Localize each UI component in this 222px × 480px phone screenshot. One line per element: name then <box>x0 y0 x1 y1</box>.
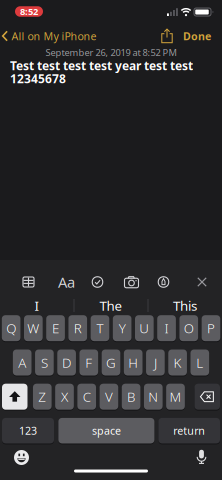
button[interactable]: K <box>168 349 187 375</box>
button[interactable]: Dictation <box>193 448 209 466</box>
staticText: return <box>173 424 205 438</box>
staticText: L <box>196 354 203 371</box>
button[interactable]: 123 <box>2 418 54 443</box>
staticText: The <box>99 297 122 314</box>
staticText: U <box>139 319 149 337</box>
button[interactable]: The <box>76 296 146 315</box>
button[interactable]: This <box>150 296 220 315</box>
staticText: I <box>165 319 169 337</box>
button[interactable]: H <box>124 349 142 375</box>
staticText: Y <box>119 319 126 337</box>
button[interactable]: G <box>102 349 120 375</box>
button[interactable]: Back <box>1 27 96 45</box>
button[interactable]: F <box>79 349 98 375</box>
button[interactable]: Insert photo <box>122 274 140 290</box>
button[interactable]: U <box>135 315 154 341</box>
staticText: September 26, 2019 at 8:52 PM <box>45 46 176 59</box>
button[interactable]: I <box>2 296 72 315</box>
button[interactable]: Done <box>183 27 211 45</box>
staticText: Q <box>6 319 16 337</box>
staticText: D <box>62 354 71 371</box>
staticText: W <box>27 319 39 337</box>
button[interactable]: D <box>57 349 76 375</box>
button[interactable]: C <box>77 384 96 410</box>
staticText: N <box>148 388 158 405</box>
staticText: 8:52 <box>20 5 38 18</box>
staticText: This <box>173 297 197 314</box>
button[interactable]: Delete <box>194 384 220 410</box>
button[interactable]: P <box>202 315 220 341</box>
staticText: I <box>34 297 39 314</box>
staticText: All on My iPhone <box>11 29 96 43</box>
staticText: P <box>207 319 215 337</box>
button[interactable]: return <box>158 418 220 443</box>
button[interactable]: E <box>46 315 65 341</box>
button[interactable]: Text formatting <box>57 274 75 290</box>
staticText: H <box>128 354 138 371</box>
staticText: Z <box>38 388 46 405</box>
button[interactable]: Y <box>113 315 131 341</box>
staticText: X <box>61 388 68 405</box>
button[interactable]: O <box>179 315 198 341</box>
staticText: E <box>52 319 59 337</box>
staticText: R <box>74 319 82 337</box>
staticText: B <box>127 388 135 405</box>
staticText: C <box>83 388 91 405</box>
button[interactable]: A <box>13 349 31 375</box>
button[interactable]: Emoji <box>11 447 31 467</box>
staticText: K <box>174 354 182 371</box>
button[interactable]: L <box>190 349 209 375</box>
button[interactable]: W <box>24 315 43 341</box>
staticText: T <box>96 319 103 337</box>
staticText: space <box>92 424 121 438</box>
button[interactable]: Checklist <box>88 274 106 290</box>
button[interactable]: T <box>91 315 109 341</box>
staticText: V <box>105 388 113 405</box>
button[interactable]: I <box>157 315 176 341</box>
button[interactable]: N <box>144 384 163 410</box>
staticText: M <box>169 388 181 405</box>
button[interactable]: Q <box>2 315 20 341</box>
button[interactable]: S <box>35 349 54 375</box>
staticText: S <box>41 354 48 371</box>
button[interactable]: Recording indicator <box>15 6 43 17</box>
staticText: Test test test test year test test <box>10 57 193 73</box>
button[interactable]: R <box>68 315 87 341</box>
button[interactable]: Z <box>33 384 52 410</box>
staticText: Aa <box>58 272 75 292</box>
staticText: O <box>184 319 194 337</box>
button[interactable]: Dismiss toolbar <box>194 274 210 290</box>
staticText: J <box>154 354 157 371</box>
button[interactable]: J <box>146 349 165 375</box>
button[interactable]: X <box>55 384 74 410</box>
staticText: G <box>106 354 116 371</box>
button[interactable]: Shift <box>2 384 27 410</box>
button[interactable]: Share <box>158 27 176 45</box>
button[interactable]: space <box>58 418 154 443</box>
button[interactable]: Markup <box>154 274 172 290</box>
staticText: 123 <box>19 424 37 438</box>
button[interactable]: M <box>166 384 185 410</box>
staticText: F <box>85 354 92 371</box>
staticText: 12345678 <box>10 70 66 86</box>
button[interactable]: B <box>122 384 140 410</box>
button[interactable]: V <box>99 384 118 410</box>
staticText: Done <box>183 29 211 43</box>
button[interactable]: Insert table <box>19 274 37 290</box>
staticText: A <box>18 354 26 371</box>
